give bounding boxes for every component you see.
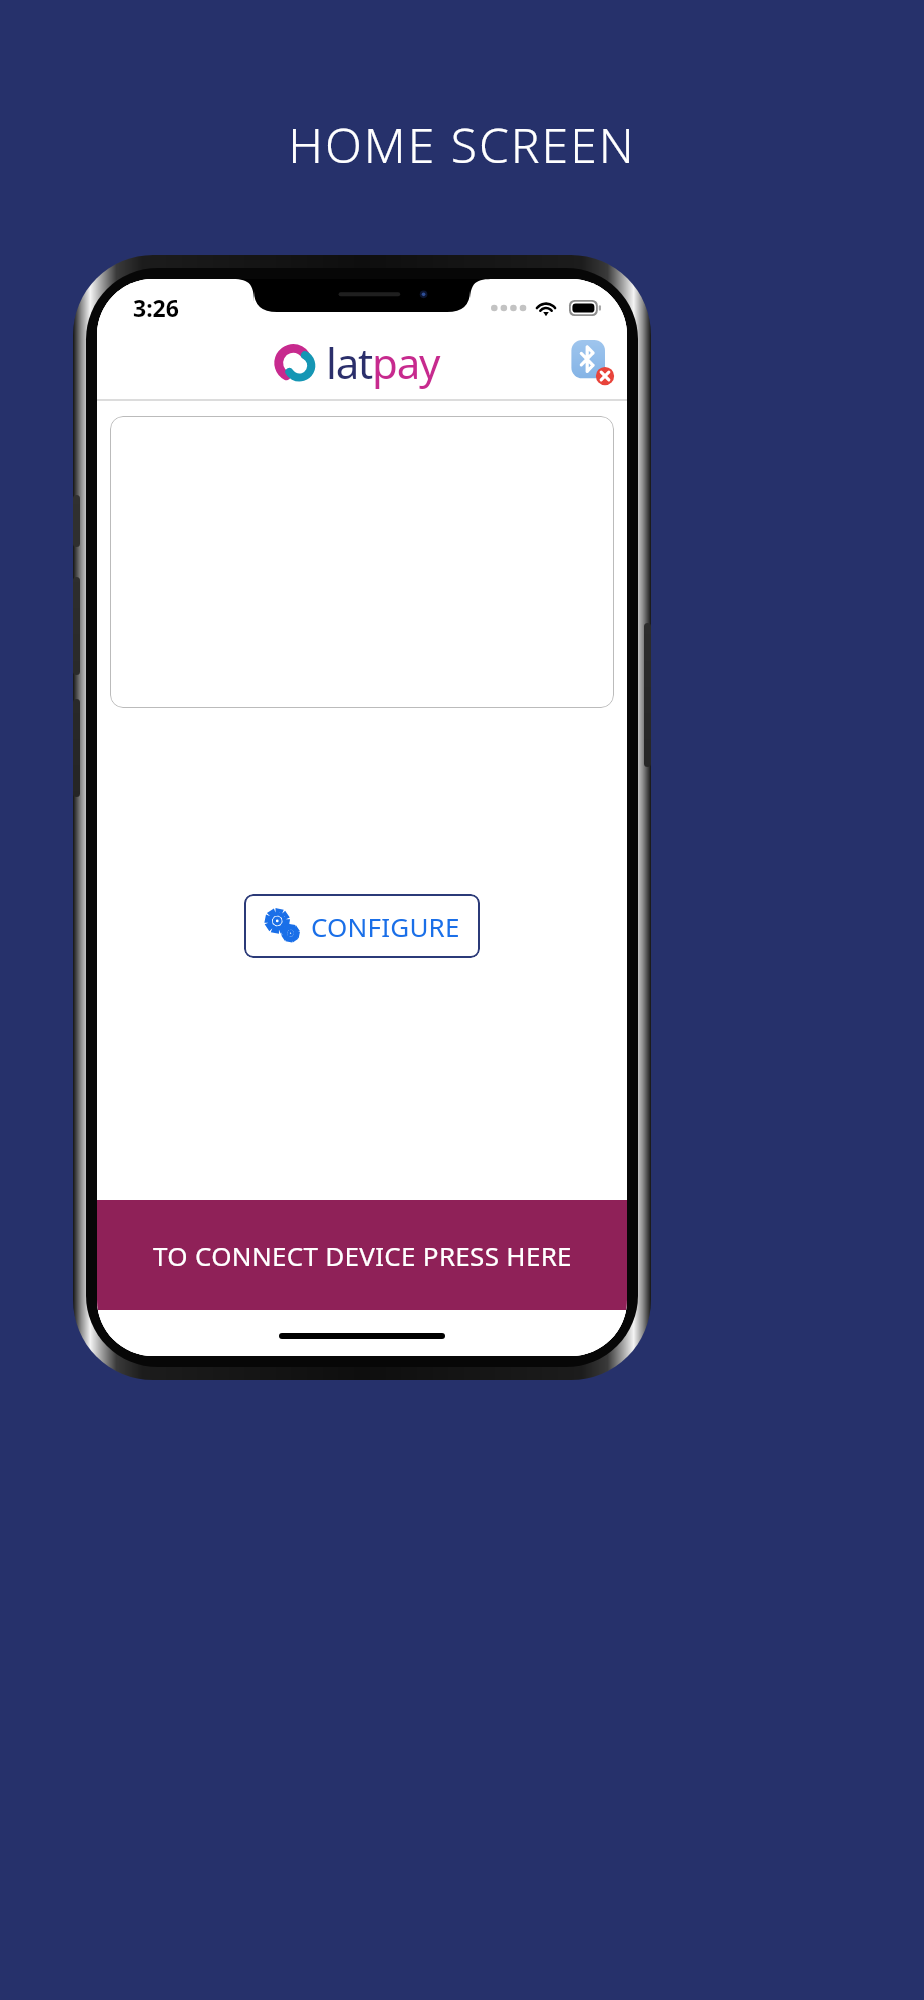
staticText: CONFIGURE [311,909,460,944]
button[interactable]: TO CONNECT DEVICE PRESS HERE [97,1200,627,1310]
button[interactable]: Bluetooth disconnected [565,334,621,390]
staticText: TO CONNECT DEVICE PRESS HERE [153,1238,572,1273]
staticText: lat [326,334,372,391]
button[interactable]: CONFIGURE [244,894,480,958]
staticText: HOME SCREEN [288,112,636,177]
staticText: 3:26 [133,292,179,323]
staticText: pay [372,334,440,391]
